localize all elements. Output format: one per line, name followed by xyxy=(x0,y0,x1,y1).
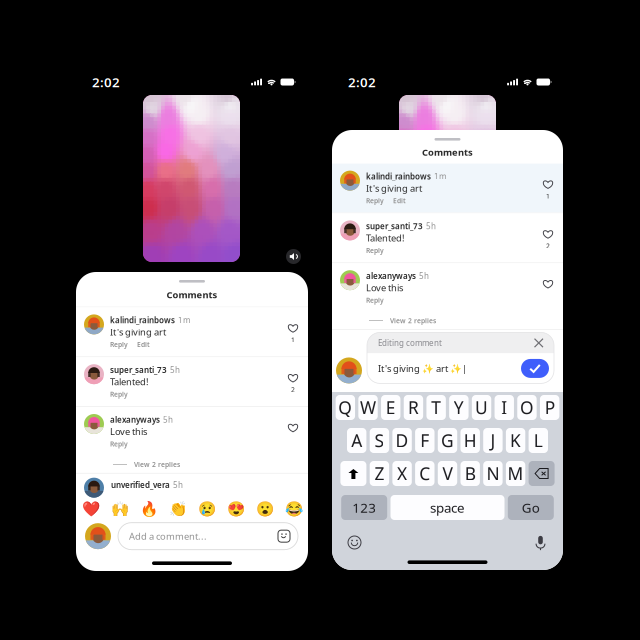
staticText: Edit xyxy=(137,340,150,349)
button[interactable]: 🙌 xyxy=(105,500,134,519)
staticText: kalindi_rainbows xyxy=(366,171,431,182)
button[interactable]: V xyxy=(438,461,457,486)
button[interactable]: S xyxy=(370,428,389,453)
staticText: unverified_vera xyxy=(111,480,170,490)
button[interactable]: G xyxy=(438,428,457,453)
button[interactable]: Shift xyxy=(340,461,366,486)
staticText: Add a comment... xyxy=(129,530,207,542)
button[interactable]: Like xyxy=(288,423,298,433)
button[interactable]: Q xyxy=(336,395,355,420)
button[interactable]: Submit edit xyxy=(521,359,549,378)
button[interactable]: W xyxy=(358,395,378,420)
button[interactable]: Reply xyxy=(366,296,384,305)
button[interactable]: P xyxy=(540,395,559,420)
button[interactable]: Like xyxy=(543,180,553,190)
staticText: super_santi_73 xyxy=(110,365,167,375)
button[interactable]: Cancel editing xyxy=(534,339,543,347)
button[interactable]: Reply xyxy=(110,390,128,399)
staticText: Reply xyxy=(366,246,384,255)
staticText: Reply xyxy=(366,196,384,205)
button[interactable]: Dictate xyxy=(534,535,547,550)
staticText: U xyxy=(475,396,488,419)
staticText: Reply xyxy=(110,340,128,349)
button[interactable]: N xyxy=(483,461,503,486)
button[interactable]: ❤️ xyxy=(76,500,105,519)
staticText: 2 xyxy=(546,241,550,250)
staticText: It's giving ✨ art ✨| xyxy=(378,362,467,375)
staticText: 😢 xyxy=(197,501,215,518)
button[interactable]: K xyxy=(506,428,525,453)
button[interactable]: Reply xyxy=(110,340,128,349)
staticText: L xyxy=(534,429,543,452)
button[interactable]: Like xyxy=(543,279,553,289)
staticText: Reply xyxy=(110,390,128,399)
button[interactable]: Z xyxy=(370,461,389,486)
staticText: M xyxy=(508,462,524,485)
button[interactable]: R xyxy=(404,395,423,420)
staticText: Z xyxy=(374,462,384,485)
staticText: 😂 xyxy=(284,501,302,518)
button[interactable]: O xyxy=(517,395,537,420)
button[interactable]: J xyxy=(483,428,503,453)
staticText: F xyxy=(420,429,429,452)
staticText: View 2 replies xyxy=(390,316,436,325)
staticText: Love this xyxy=(366,281,403,294)
button[interactable]: T xyxy=(426,395,446,420)
button[interactable]: 😍 xyxy=(221,500,250,519)
button[interactable]: View 2 replies xyxy=(332,312,563,329)
staticText: Q xyxy=(338,396,352,419)
button[interactable]: Delete xyxy=(529,461,555,486)
button[interactable]: Like xyxy=(288,323,298,333)
staticText: Reply xyxy=(110,440,128,448)
staticText: A xyxy=(351,429,362,452)
button[interactable]: View 2 replies xyxy=(76,456,308,473)
staticText: space xyxy=(430,499,465,516)
button[interactable]: Emoji keyboard xyxy=(348,536,361,549)
staticText: E xyxy=(386,396,396,419)
staticText: 1m xyxy=(434,171,446,182)
button[interactable]: 😮 xyxy=(250,500,279,519)
button[interactable]: M xyxy=(506,461,525,486)
button[interactable]: L xyxy=(529,428,548,453)
button[interactable]: Like xyxy=(288,373,298,383)
button[interactable]: 🔥 xyxy=(134,500,163,519)
button[interactable]: space xyxy=(390,495,504,520)
button[interactable]: U xyxy=(472,395,491,420)
button[interactable]: E xyxy=(381,395,400,420)
button[interactable]: Like xyxy=(543,229,553,239)
staticText: Love this xyxy=(110,425,147,438)
staticText: 1 xyxy=(291,335,295,344)
staticText: It's giving art xyxy=(366,182,422,194)
button[interactable]: Add a comment... xyxy=(118,523,298,550)
button[interactable]: F xyxy=(415,428,434,453)
button[interactable]: I xyxy=(494,395,514,420)
staticText: Comments xyxy=(166,288,217,301)
staticText: kalindi_rainbows xyxy=(110,315,175,325)
button[interactable]: Edit xyxy=(393,196,406,205)
button[interactable]: Reply xyxy=(366,196,384,205)
staticText: 😍 xyxy=(226,501,244,518)
button[interactable]: X xyxy=(392,461,412,486)
staticText: 1m xyxy=(178,315,190,325)
button[interactable]: 123 xyxy=(341,495,387,520)
button[interactable]: Go xyxy=(508,495,554,520)
staticText: X xyxy=(397,462,407,485)
button[interactable]: C xyxy=(415,461,434,486)
button[interactable]: D xyxy=(392,428,412,453)
button[interactable]: Sound on xyxy=(286,249,301,264)
button[interactable]: Reply xyxy=(110,440,128,448)
button[interactable]: H xyxy=(460,428,480,453)
staticText: G xyxy=(441,429,454,452)
button[interactable]: Edit xyxy=(137,340,150,349)
staticText: Talented! xyxy=(366,232,405,244)
button[interactable]: Y xyxy=(449,395,468,420)
button[interactable]: Reply xyxy=(366,246,384,255)
staticText: Reply xyxy=(366,296,384,305)
button[interactable]: 😂 xyxy=(279,500,308,519)
staticText: ❤️ xyxy=(81,501,99,518)
button[interactable]: A xyxy=(347,428,366,453)
button[interactable]: 👏 xyxy=(163,500,192,519)
button[interactable]: B xyxy=(460,461,480,486)
button[interactable]: 😢 xyxy=(192,500,221,519)
staticText: 5h xyxy=(170,365,180,375)
